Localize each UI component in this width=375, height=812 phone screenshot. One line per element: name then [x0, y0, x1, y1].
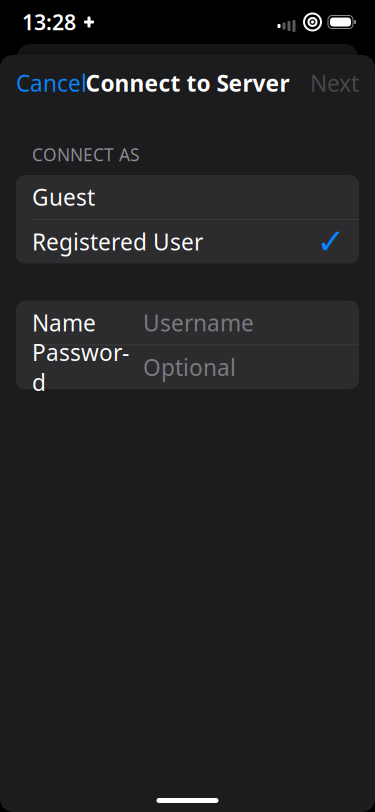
button[interactable]: Cancel [0, 57, 103, 109]
staticText: Cancel [16, 68, 87, 98]
staticText: 13:28 [22, 8, 76, 36]
button[interactable]: Registered User [16, 220, 359, 264]
button[interactable]: Guest [16, 175, 359, 219]
staticText: ✓ [316, 222, 345, 261]
button[interactable]: Password [16, 345, 359, 389]
staticText: Next [310, 68, 359, 98]
staticText: Connect to Server [85, 68, 289, 98]
staticText: Password [32, 337, 129, 397]
staticText: Guest [32, 182, 95, 212]
button[interactable]: Name [16, 301, 359, 345]
staticText: Name [32, 308, 96, 338]
staticText: CONNECT AS [32, 143, 140, 166]
staticText: Optional [143, 352, 236, 382]
staticText: Username [143, 308, 254, 338]
button[interactable]: Next [294, 57, 375, 109]
staticText: Registered User [32, 227, 203, 257]
